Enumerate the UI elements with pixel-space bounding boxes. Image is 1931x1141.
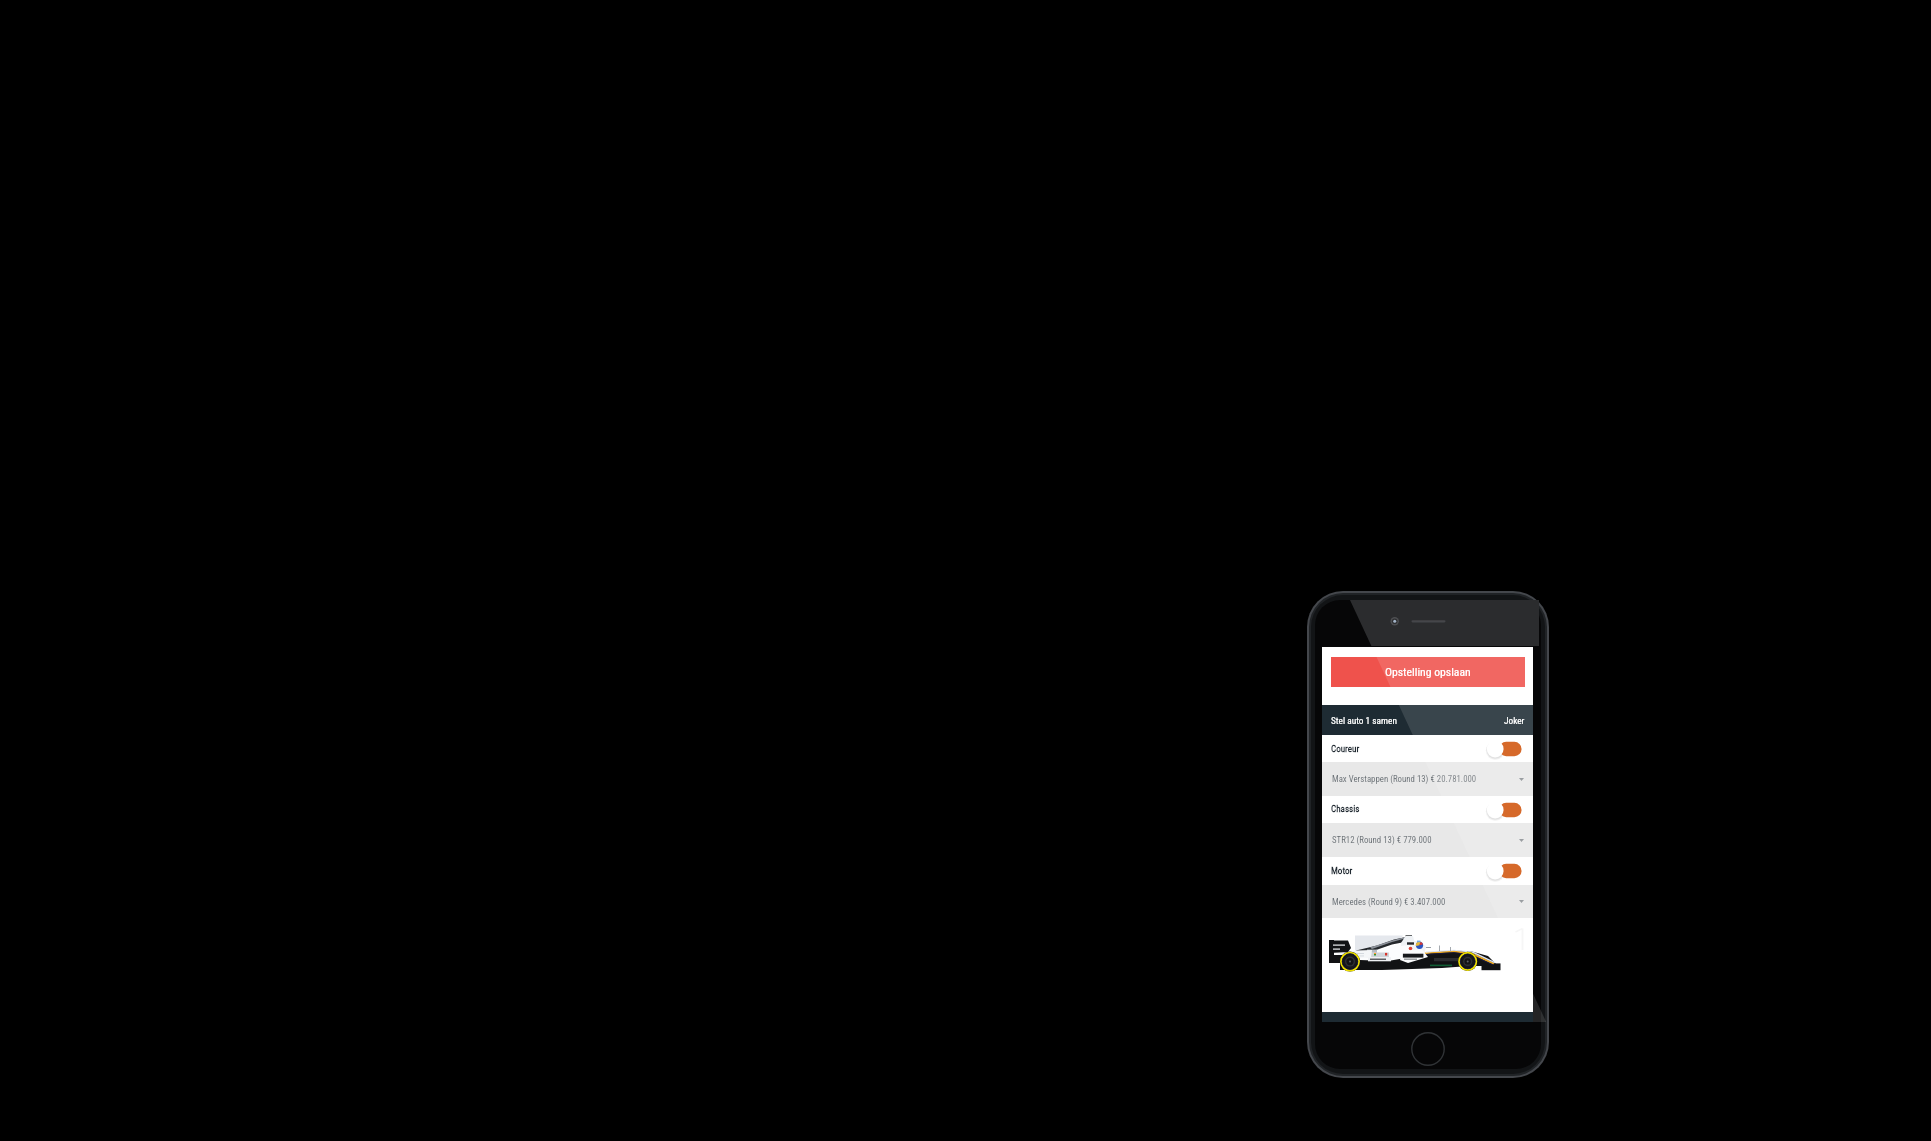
button[interactable]: STR12 (Round 13) € 779.000	[1322, 823, 1533, 857]
button[interactable]: Max Verstappen (Round 13) € 20.781.000	[1322, 762, 1533, 796]
button[interactable]: Motor	[1322, 857, 1533, 885]
staticText: Coureur	[1331, 744, 1360, 755]
button[interactable]: Joker	[1504, 715, 1525, 726]
staticText: Opstelling opslaan	[1385, 665, 1471, 679]
staticText: Motor	[1331, 866, 1353, 877]
staticText: Mercedes (Round 9) € 3.407.000	[1332, 897, 1446, 907]
staticText: Stel auto 1 samen	[1331, 715, 1397, 726]
other: Toggle	[1486, 739, 1522, 759]
button[interactable]: Chassis	[1322, 796, 1533, 823]
other: Toggle	[1486, 861, 1522, 881]
staticText: Joker	[1504, 715, 1525, 726]
button[interactable]: Coureur	[1322, 736, 1533, 762]
staticText: Max Verstappen (Round 13) € 20.781.000	[1332, 774, 1477, 784]
staticText: STR12 (Round 13) € 779.000	[1332, 835, 1432, 845]
staticText: Chassis	[1331, 804, 1360, 815]
button[interactable]: Mercedes (Round 9) € 3.407.000	[1322, 885, 1533, 918]
button[interactable]: Opstelling opslaan	[1331, 657, 1525, 687]
other: Toggle	[1486, 800, 1522, 820]
